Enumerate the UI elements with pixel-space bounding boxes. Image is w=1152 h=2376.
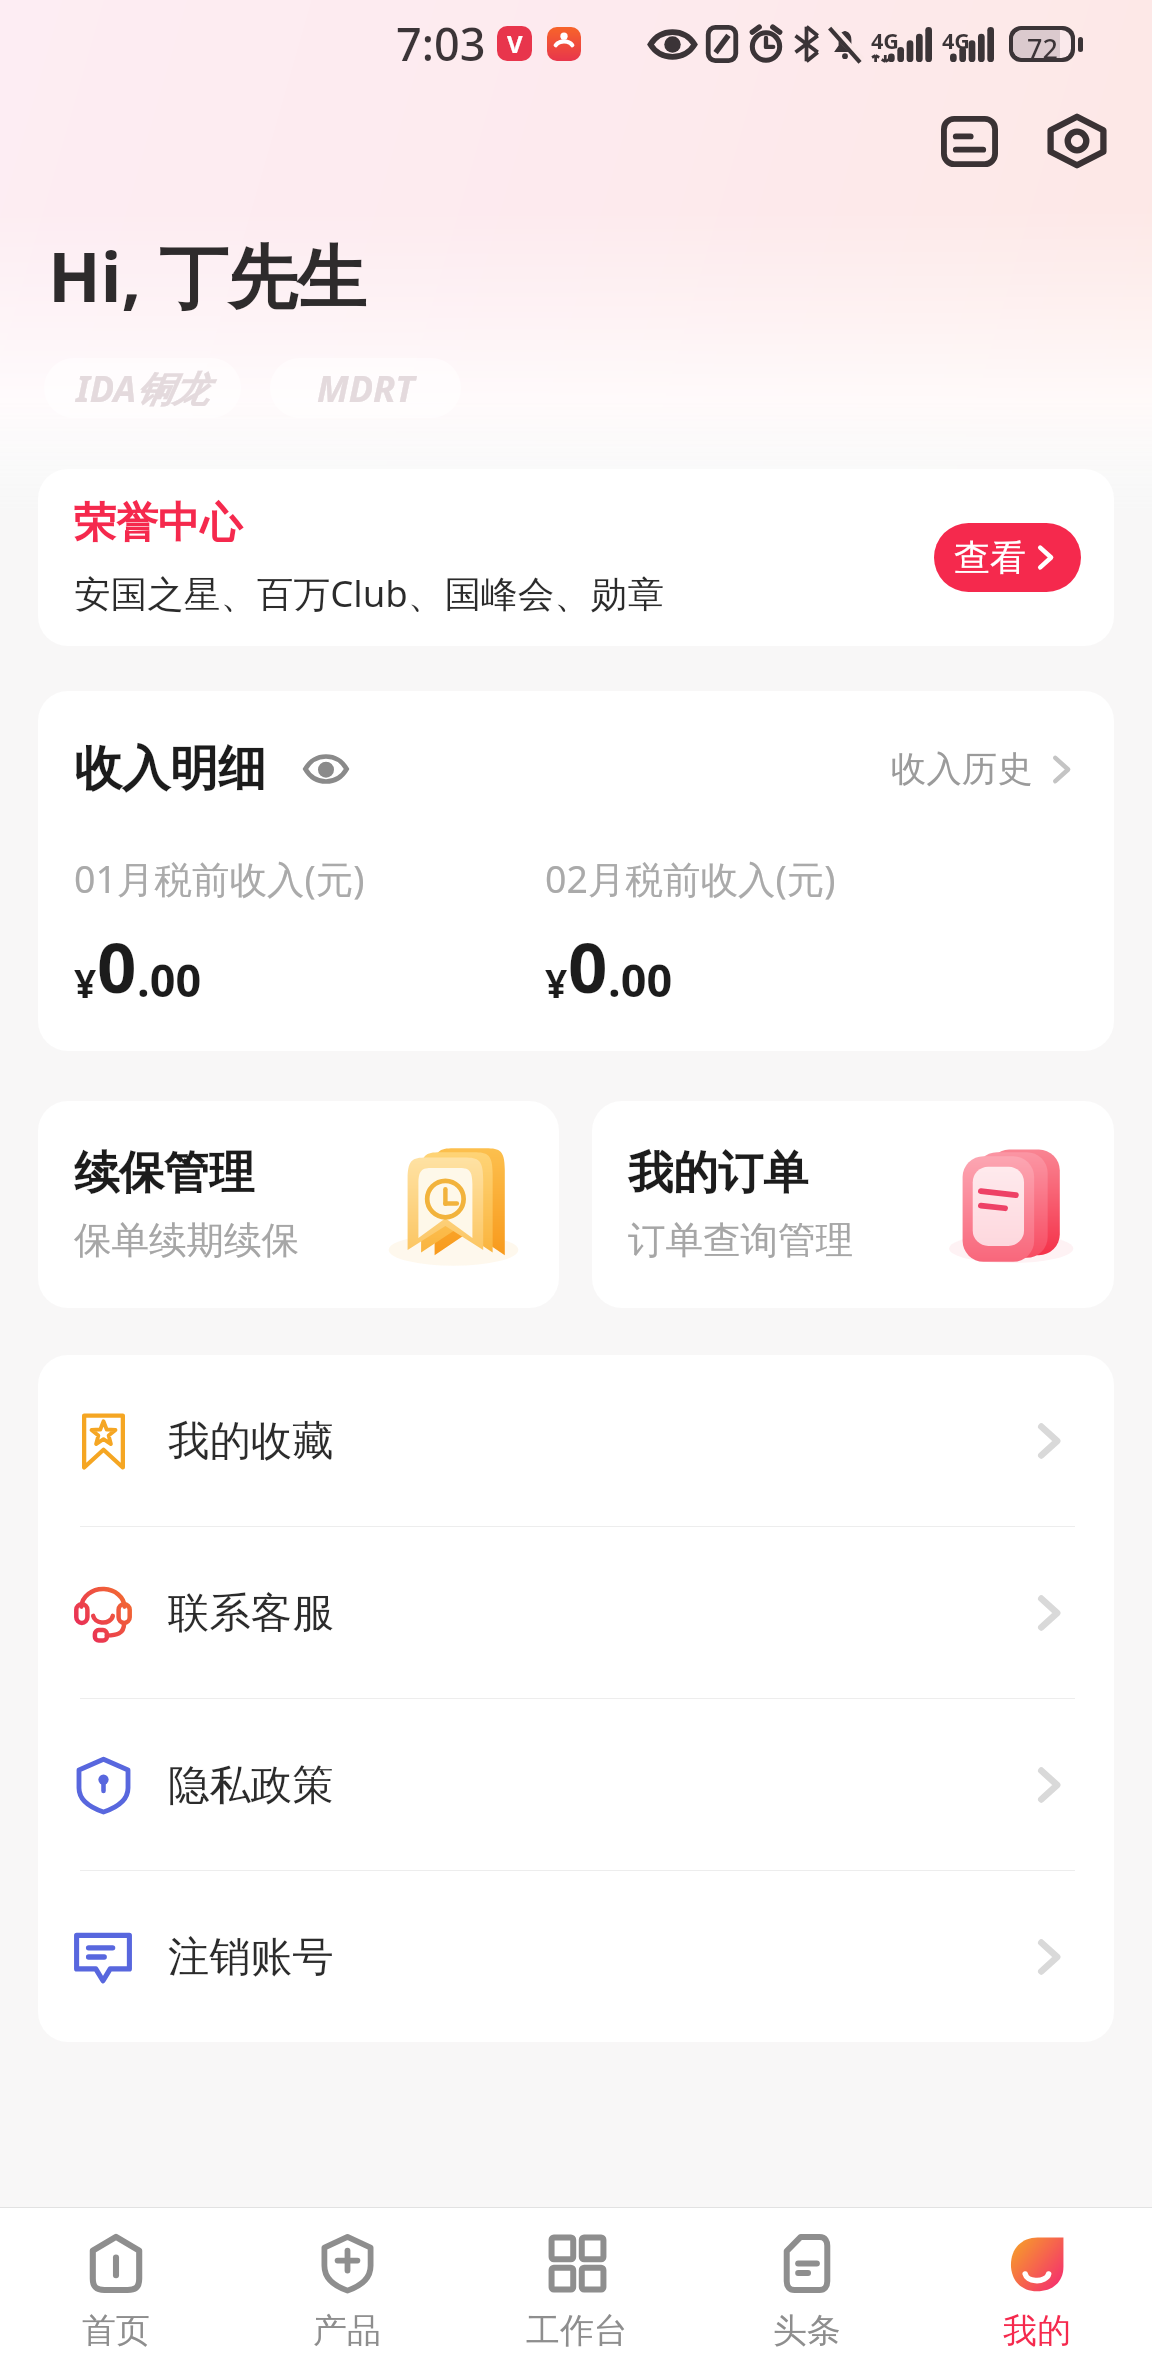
staticText: MDRT bbox=[317, 364, 415, 413]
staticText: ¥ bbox=[74, 956, 97, 1009]
staticText: 收入明细 bbox=[74, 739, 266, 799]
button[interactable]: 我的收藏 bbox=[38, 1355, 1114, 1526]
staticText: 工作台 bbox=[526, 2309, 628, 2352]
button[interactable]: 联系客服 bbox=[38, 1527, 1114, 1698]
staticText: 产品 bbox=[313, 2309, 381, 2352]
staticText: 查看 bbox=[954, 535, 1026, 580]
staticText: 4G bbox=[942, 26, 970, 55]
button[interactable]: 头条 bbox=[692, 2208, 922, 2376]
staticText: 注销账号 bbox=[168, 1931, 334, 1983]
staticText: 4G bbox=[871, 26, 899, 55]
button[interactable]: Settings bbox=[1023, 87, 1131, 195]
staticText: 0 bbox=[568, 919, 608, 1013]
staticText: 我的收藏 bbox=[168, 1415, 334, 1467]
staticText: 头条 bbox=[773, 2309, 841, 2352]
staticText: 隐私政策 bbox=[168, 1759, 334, 1811]
staticText: 02月税前收入(元) bbox=[545, 853, 836, 904]
staticText: 订单查询管理 bbox=[628, 1217, 853, 1264]
button[interactable]: 我的 bbox=[922, 2208, 1152, 2376]
staticText: 我的订单 bbox=[628, 1145, 808, 1202]
staticText: 收入历史 bbox=[891, 747, 1033, 792]
button[interactable]: 注销账号 bbox=[38, 1871, 1114, 2042]
staticText: ¥ bbox=[545, 956, 568, 1009]
staticText: 7:03 bbox=[396, 13, 486, 74]
button[interactable]: 工作台 bbox=[462, 2208, 692, 2376]
staticText: 01月税前收入(元) bbox=[74, 853, 365, 904]
button[interactable]: 荣誉中心 bbox=[38, 469, 1114, 646]
staticText: 首页 bbox=[82, 2309, 150, 2352]
staticText: 荣誉中心 bbox=[74, 497, 242, 550]
staticText: V bbox=[507, 27, 523, 60]
button[interactable]: 查看 bbox=[934, 523, 1081, 592]
staticText: 我的 bbox=[1003, 2309, 1071, 2352]
button[interactable]: 我的订单 bbox=[592, 1101, 1114, 1308]
staticText: 安国之星、百万Club、国峰会、勋章 bbox=[74, 568, 665, 618]
button[interactable]: Toggle income visibility bbox=[293, 736, 359, 802]
staticText: 联系客服 bbox=[168, 1587, 334, 1639]
staticText: 续保管理 bbox=[74, 1145, 254, 1202]
staticText: 0 bbox=[97, 919, 137, 1013]
staticText: Hi, 丁先生 bbox=[48, 228, 367, 322]
button[interactable]: 收入历史 bbox=[891, 747, 1081, 792]
button[interactable]: 续保管理 bbox=[38, 1101, 559, 1308]
button[interactable]: Messages bbox=[915, 87, 1023, 195]
staticText: 保单续期续保 bbox=[74, 1217, 299, 1264]
staticText: .00 bbox=[137, 949, 202, 1010]
button[interactable]: 产品 bbox=[231, 2208, 462, 2376]
staticText: IDA铜龙 bbox=[76, 364, 209, 413]
button[interactable]: 首页 bbox=[0, 2208, 231, 2376]
button[interactable]: 隐私政策 bbox=[38, 1699, 1114, 1870]
staticText: .00 bbox=[608, 949, 673, 1010]
button[interactable]: IDA铜龙 bbox=[44, 358, 241, 418]
button[interactable]: MDRT bbox=[270, 358, 461, 418]
staticText: 72 bbox=[1027, 30, 1058, 58]
